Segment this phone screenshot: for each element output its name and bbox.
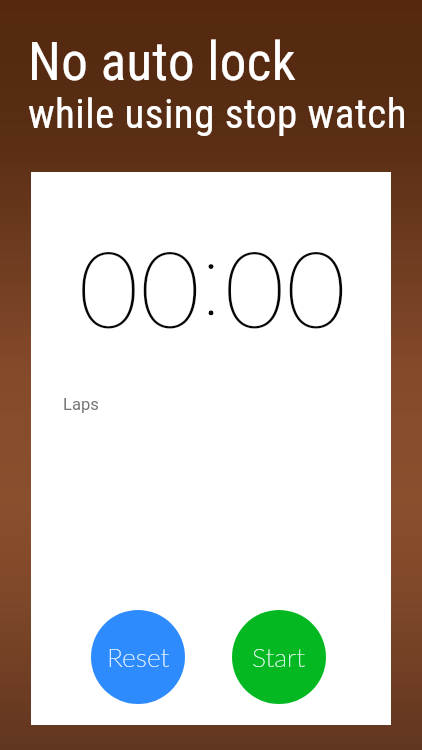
staticText: Laps <box>63 395 99 414</box>
staticText: 00 <box>78 224 202 350</box>
staticText: 00 <box>224 224 348 350</box>
staticText: No auto lock <box>28 31 296 93</box>
staticText: Reset <box>107 641 170 673</box>
button[interactable]: Start <box>232 610 326 704</box>
staticText: Start <box>252 641 306 673</box>
staticText: while using stop watch <box>28 90 408 138</box>
button[interactable]: Reset <box>91 610 185 704</box>
